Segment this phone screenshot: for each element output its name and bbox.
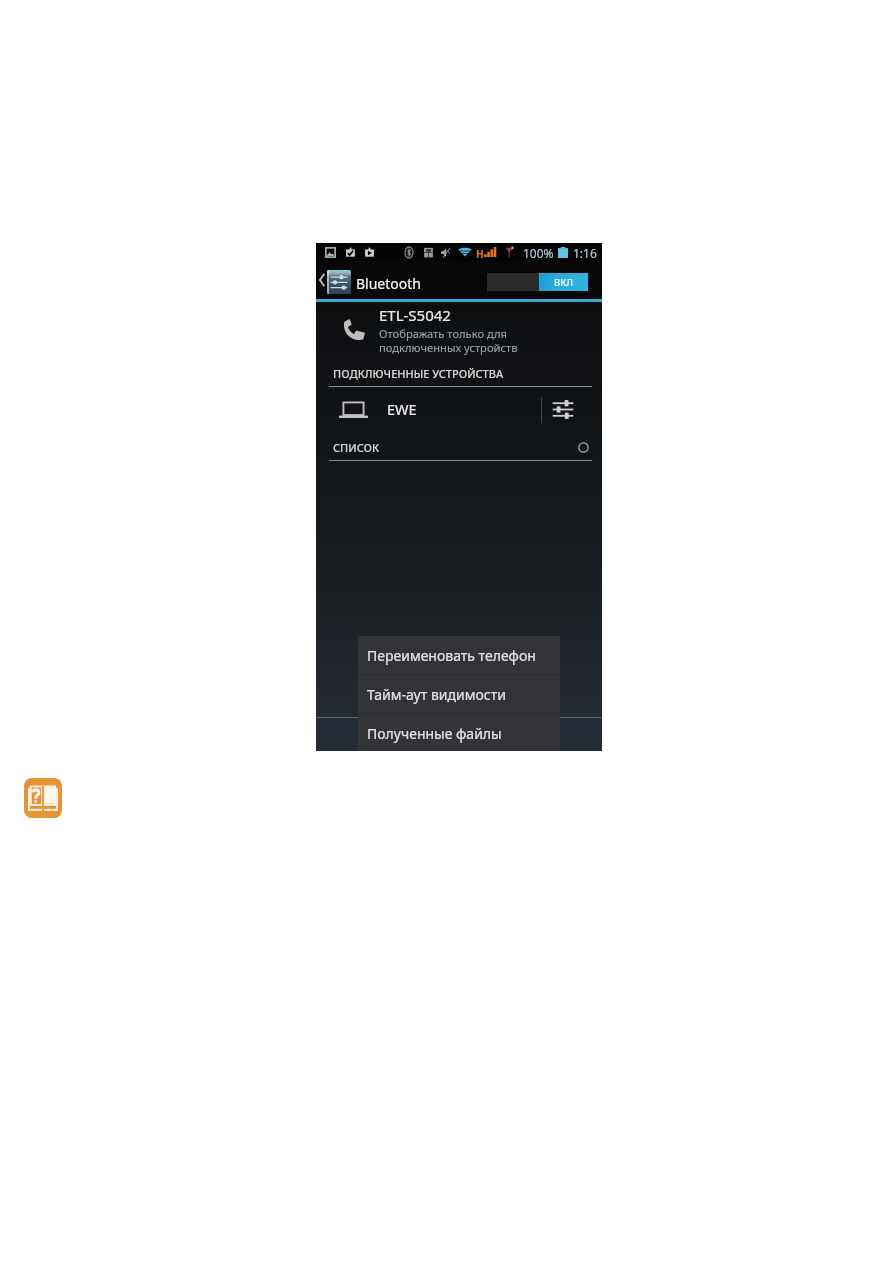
staticText: Bluetooth [356,274,421,293]
staticText: СПИСОК [333,440,379,455]
staticText: Полученные файлы [367,724,502,743]
button[interactable]: EWE [316,387,602,434]
button[interactable]: Тайм-аут видимости [358,675,560,713]
staticText: Переименовать телефон [367,646,536,665]
button[interactable]: Полученные файлы [358,714,560,751]
staticText: ETL-S5042 [379,305,451,325]
staticText: EWE [387,399,417,419]
staticText: 1:16 [573,245,597,261]
staticText: Отображать только для [379,326,508,341]
staticText: 100% [523,245,554,261]
button[interactable]: ETL-S5042 [316,302,602,360]
staticText: подключенных устройств [379,340,518,355]
staticText: H [476,247,484,261]
button[interactable]: Back [316,261,354,299]
staticText: ВКЛ [554,276,574,289]
staticText: ПОДКЛЮЧЕННЫЕ УСТРОЙСТВА [333,366,504,381]
button[interactable]: Device settings [542,387,602,434]
staticText: Тайм-аут видимости [367,685,506,704]
button[interactable]: ВКЛ [487,273,588,291]
button[interactable]: Переименовать телефон [358,636,560,674]
button[interactable]: Help [24,778,62,818]
